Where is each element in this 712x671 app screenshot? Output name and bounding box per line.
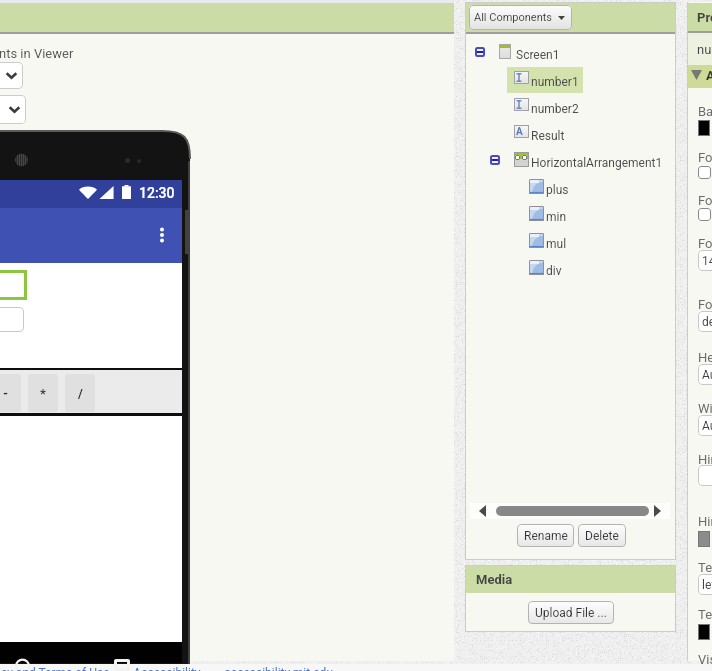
staticText: Hin bbox=[698, 514, 712, 529]
button[interactable]: Upload File ... bbox=[528, 601, 614, 624]
staticText: nu bbox=[697, 42, 712, 57]
button[interactable]: All Components bbox=[469, 5, 572, 30]
staticText: de bbox=[702, 315, 712, 329]
button[interactable]: * bbox=[28, 374, 58, 412]
button[interactable] bbox=[489, 70, 650, 94]
staticText: Result bbox=[531, 129, 565, 143]
staticText: 12:30 bbox=[139, 185, 175, 201]
button[interactable]: Dropdown bbox=[0, 95, 26, 124]
staticText: All Components bbox=[474, 11, 553, 24]
staticText: Upload File ... bbox=[535, 606, 607, 620]
button[interactable]: Checkbox bbox=[698, 166, 711, 179]
button[interactable]: - bbox=[0, 374, 21, 412]
button[interactable]: number2 textbox bbox=[0, 307, 24, 332]
staticText: 14 bbox=[702, 254, 712, 268]
staticText: Au bbox=[702, 419, 712, 433]
staticText: He bbox=[698, 350, 712, 365]
staticText: * bbox=[40, 386, 46, 401]
staticText: Tex bbox=[698, 607, 712, 622]
staticText: Media bbox=[476, 572, 513, 587]
staticText: plus bbox=[546, 183, 569, 197]
staticText: For bbox=[698, 236, 712, 251]
staticText: div bbox=[546, 264, 562, 278]
button[interactable]: Au bbox=[698, 364, 712, 385]
staticText: HorizontalArrangement1 bbox=[531, 156, 663, 170]
button[interactable] bbox=[489, 97, 650, 121]
staticText: Pro bbox=[697, 10, 712, 25]
staticText: Au bbox=[702, 368, 712, 382]
button[interactable]: Dropdown bbox=[0, 62, 23, 89]
button[interactable] bbox=[698, 465, 712, 486]
staticText: Wi bbox=[698, 401, 712, 416]
staticText: - bbox=[3, 386, 9, 401]
button[interactable] bbox=[474, 43, 650, 67]
button[interactable]: number1 textbox bbox=[0, 270, 27, 300]
staticText: Delete bbox=[585, 529, 619, 543]
staticText: number2 bbox=[531, 102, 579, 116]
staticText: For bbox=[698, 297, 712, 312]
staticText: nts in Viewer bbox=[0, 46, 74, 61]
staticText: min bbox=[546, 210, 567, 224]
staticText: Vis bbox=[698, 652, 712, 667]
button[interactable]: lef bbox=[698, 574, 712, 595]
button[interactable]: de bbox=[698, 311, 712, 332]
button[interactable]: Color swatch bbox=[698, 624, 710, 640]
staticText: A bbox=[516, 126, 523, 138]
staticText: / bbox=[78, 386, 83, 401]
button[interactable]: / bbox=[65, 374, 95, 412]
staticText: A bbox=[706, 68, 712, 83]
button[interactable]: Checkbox bbox=[698, 208, 711, 221]
button[interactable] bbox=[504, 205, 650, 229]
staticText: For bbox=[698, 150, 712, 165]
button[interactable]: More options bbox=[148, 221, 176, 249]
staticText: Rename bbox=[524, 529, 568, 543]
staticText: Ba bbox=[698, 104, 712, 119]
staticText: Hin bbox=[698, 452, 712, 467]
button[interactable] bbox=[504, 232, 650, 256]
staticText: icy and Terms of Use Accessibility acces… bbox=[0, 666, 333, 671]
button[interactable] bbox=[504, 259, 650, 283]
staticText: number1 bbox=[531, 75, 579, 89]
button[interactable] bbox=[489, 151, 650, 175]
staticText: For bbox=[698, 193, 712, 208]
staticText: Screen1 bbox=[516, 48, 560, 62]
button[interactable] bbox=[504, 178, 650, 202]
staticText: Tex bbox=[698, 560, 712, 575]
button[interactable]: Au bbox=[698, 415, 712, 436]
button[interactable]: Rename bbox=[517, 524, 574, 547]
button[interactable] bbox=[489, 124, 650, 148]
button[interactable]: Color swatch bbox=[698, 531, 710, 547]
staticText: lef bbox=[702, 578, 712, 592]
button[interactable]: 14 bbox=[698, 250, 712, 271]
staticText: mul bbox=[546, 237, 567, 251]
button[interactable]: Delete bbox=[578, 524, 626, 547]
button[interactable]: Color swatch bbox=[698, 120, 710, 136]
